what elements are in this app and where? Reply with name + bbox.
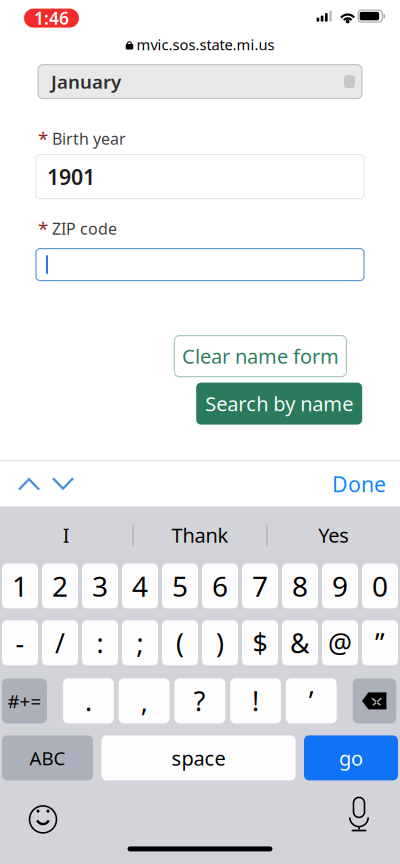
button[interactable]: mvic.sos.state.mi.us [0, 33, 400, 57]
staticText: ? [194, 683, 206, 719]
staticText: Birth year [52, 128, 126, 149]
button[interactable]: 1901 [36, 155, 364, 199]
button[interactable]: ” [362, 620, 398, 665]
button[interactable]: 4 [122, 563, 158, 608]
button[interactable]: & [282, 620, 318, 665]
button[interactable]: Emoji [20, 799, 66, 839]
button[interactable]: ’ [286, 678, 337, 723]
staticText: ( [176, 625, 184, 661]
staticText: Yes [318, 522, 349, 548]
staticText: ! [252, 683, 259, 719]
staticText: 2 [52, 567, 68, 604]
button[interactable]: #+= [2, 678, 47, 723]
staticText: / [55, 625, 65, 661]
staticText: #+= [7, 688, 41, 713]
staticText: & [290, 625, 310, 661]
staticText: . [85, 683, 92, 719]
staticText: 1901 [47, 162, 95, 191]
staticText: go [339, 745, 363, 771]
button[interactable]: 3 [82, 563, 118, 608]
button[interactable]: go [304, 735, 398, 780]
staticText: 0 [372, 567, 388, 604]
button[interactable]: , [119, 678, 169, 723]
button[interactable]: 9 [322, 563, 358, 608]
staticText: ’ [309, 683, 314, 719]
staticText: 6 [212, 567, 228, 604]
button[interactable]: space [101, 735, 295, 780]
button[interactable]: 0 [362, 563, 398, 608]
button[interactable]: Yes [267, 512, 400, 558]
staticText: 5 [172, 567, 188, 604]
staticText: Done [332, 470, 386, 498]
staticText: * [38, 216, 48, 241]
button[interactable]: / [42, 620, 78, 665]
button[interactable]: 1 [2, 563, 38, 608]
button[interactable]: I [0, 512, 133, 558]
button[interactable]: ? [174, 678, 225, 723]
button[interactable]: Clear name form [174, 336, 346, 377]
button[interactable]: 6 [202, 563, 238, 608]
staticText: ; [136, 625, 143, 661]
staticText: , [141, 683, 148, 719]
staticText: ) [216, 625, 224, 661]
staticText: $ [252, 625, 267, 661]
button[interactable]: 8 [282, 563, 318, 608]
button[interactable]: Done [332, 461, 400, 506]
button[interactable]: ; [122, 620, 158, 665]
staticText: : [96, 625, 103, 661]
button[interactable]: . [63, 678, 114, 723]
button[interactable]: ! [230, 678, 281, 723]
staticText: 1 [12, 567, 28, 604]
button[interactable]: : [82, 620, 118, 665]
button[interactable]: Previous field [12, 461, 46, 506]
button[interactable]: ( [162, 620, 198, 665]
staticText: 4 [132, 567, 148, 604]
button[interactable]: ) [202, 620, 238, 665]
button[interactable]: 5 [162, 563, 198, 608]
button[interactable]: ABC [2, 735, 93, 780]
staticText: Thank [171, 522, 228, 548]
staticText: mvic.sos.state.mi.us [136, 35, 274, 54]
button[interactable]: Delete [353, 678, 396, 723]
button[interactable]: - [2, 620, 38, 665]
button[interactable]: 2 [42, 563, 78, 608]
button[interactable]: 7 [242, 563, 278, 608]
button[interactable]: Thank [134, 512, 266, 558]
staticText: ” [375, 625, 385, 661]
staticText: Clear name form [182, 343, 339, 369]
button[interactable]: $ [242, 620, 278, 665]
staticText: 3 [92, 567, 108, 604]
button[interactable]: Next field [46, 461, 80, 506]
button[interactable]: @ [322, 620, 358, 665]
button[interactable]: January [38, 65, 362, 99]
staticText: I [63, 522, 70, 548]
staticText: Search by name [205, 390, 353, 417]
button[interactable]: Search by name [196, 383, 362, 425]
staticText: January [51, 69, 121, 94]
staticText: ZIP code [52, 218, 117, 239]
staticText: space [171, 745, 225, 771]
staticText: 1:46 [34, 7, 69, 30]
button[interactable]: Dictation [336, 799, 382, 839]
staticText: 7 [252, 567, 268, 604]
staticText: ABC [29, 745, 65, 770]
staticText: - [15, 625, 24, 661]
staticText: 8 [292, 567, 308, 604]
staticText: @ [328, 625, 352, 661]
staticText: * [38, 126, 48, 151]
staticText: 9 [332, 567, 348, 604]
